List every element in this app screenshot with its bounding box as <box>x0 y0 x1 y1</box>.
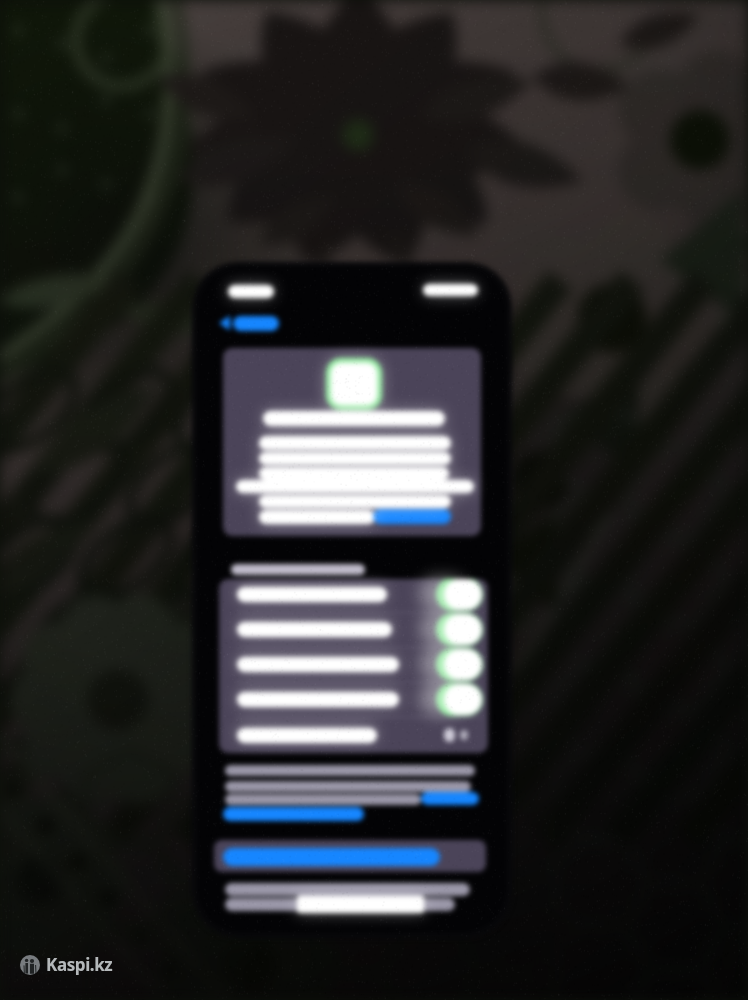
button[interactable] <box>214 840 486 872</box>
button[interactable] <box>219 647 488 682</box>
button[interactable] <box>219 717 488 753</box>
button[interactable]: Back <box>219 315 279 331</box>
button[interactable] <box>219 612 488 647</box>
button[interactable] <box>219 682 488 717</box>
button[interactable] <box>223 807 364 821</box>
button[interactable] <box>219 579 488 612</box>
button[interactable] <box>223 348 481 536</box>
staticText: Kaspi.kz <box>46 953 113 976</box>
